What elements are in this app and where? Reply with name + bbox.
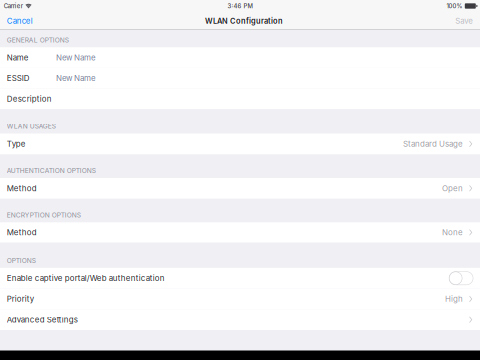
staticText: OPTIONS (7, 256, 36, 264)
staticText: Type (7, 139, 26, 149)
button[interactable]: Description (0, 88, 480, 109)
staticText: Description (7, 94, 52, 104)
button[interactable]: Method (0, 178, 480, 199)
button[interactable]: Enable captive portal/Web authentication (0, 268, 480, 289)
button[interactable]: Save (455, 13, 480, 29)
staticText: Standard Usage (403, 139, 463, 149)
button[interactable]: Priority (0, 289, 480, 309)
staticText: ENCRYPTION OPTIONS (7, 211, 81, 219)
button[interactable]: Method (0, 222, 480, 242)
button[interactable]: Advanced Settings (0, 309, 480, 330)
button[interactable]: Name (0, 47, 480, 68)
staticText: Save (455, 16, 473, 26)
staticText: Open (442, 183, 463, 193)
button[interactable]: Type (0, 133, 480, 154)
staticText: AUTHENTICATION OPTIONS (7, 167, 96, 175)
staticText: Priority (7, 294, 34, 304)
staticText: Enable captive portal/Web authentication (7, 273, 165, 283)
staticText: 3:46 PM (227, 2, 252, 10)
staticText: High (445, 294, 463, 304)
staticText: None (442, 228, 463, 237)
staticText: Name (7, 53, 29, 62)
staticText: WLAN Configuration (205, 16, 283, 25)
staticText: Method (7, 183, 37, 193)
staticText: 100% (447, 2, 463, 10)
staticText: New Name (56, 53, 96, 62)
staticText: Method (7, 228, 37, 237)
staticText: GENERAL OPTIONS (7, 36, 69, 44)
staticText: WLAN USAGES (7, 122, 56, 130)
staticText: ESSID (7, 73, 30, 83)
button[interactable]: Cancel (0, 13, 33, 29)
staticText: Carrier (4, 2, 23, 10)
button[interactable]: ESSID (0, 68, 480, 88)
staticText: Advanced Settings (7, 315, 78, 324)
staticText: New Name (56, 73, 96, 83)
staticText: Cancel (7, 16, 33, 26)
